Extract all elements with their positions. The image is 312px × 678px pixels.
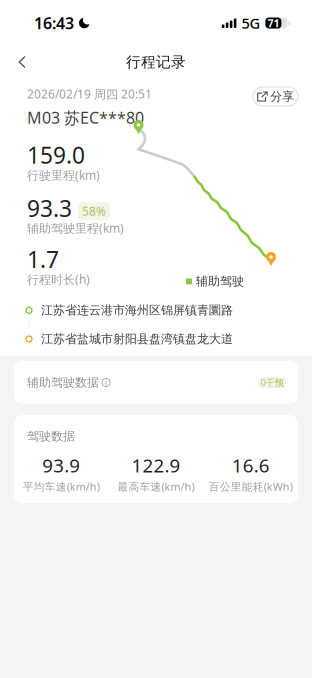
button[interactable]: Back <box>0 45 42 78</box>
staticText: 行驶里程(km) <box>27 167 100 183</box>
staticText: 58% <box>82 203 106 219</box>
button[interactable]: 分享 <box>253 87 298 106</box>
staticText: 江苏省盐城市射阳县盘湾镇盘龙大道 <box>41 332 233 346</box>
staticText: 江苏省连云港市海州区锦屏镇青圜路 <box>41 303 233 318</box>
staticText: 71 <box>267 16 279 30</box>
staticText: 0干预 <box>260 376 283 389</box>
staticText: 93.3 <box>27 193 72 223</box>
staticText: 辅助驾驶里程(km) <box>27 220 124 236</box>
staticText: 行程时长(h) <box>27 271 90 287</box>
staticText: 93.9 <box>42 453 80 477</box>
staticText: 16:43 <box>34 12 74 34</box>
staticText: 159.0 <box>27 140 85 170</box>
staticText: 最高车速(km/h) <box>117 479 194 494</box>
staticText: 百公里能耗(kWh) <box>209 479 293 494</box>
staticText: 122.9 <box>131 453 180 477</box>
staticText: 2026/02/19 周四 20:51 <box>27 86 152 102</box>
staticText: 16.6 <box>232 453 270 477</box>
staticText: 分享 <box>270 89 294 104</box>
staticText: i <box>105 377 107 388</box>
staticText: 辅助驾驶数据 <box>27 375 99 390</box>
staticText: 5G <box>241 13 260 33</box>
staticText: 平均车速(km/h) <box>23 479 100 494</box>
staticText: M03 苏EC***80 <box>27 107 144 128</box>
staticText: 1.7 <box>27 244 59 274</box>
staticText: 驾驶数据 <box>27 429 75 444</box>
staticText: 辅助驾驶 <box>196 274 244 289</box>
staticText: 行程记录 <box>126 53 186 71</box>
